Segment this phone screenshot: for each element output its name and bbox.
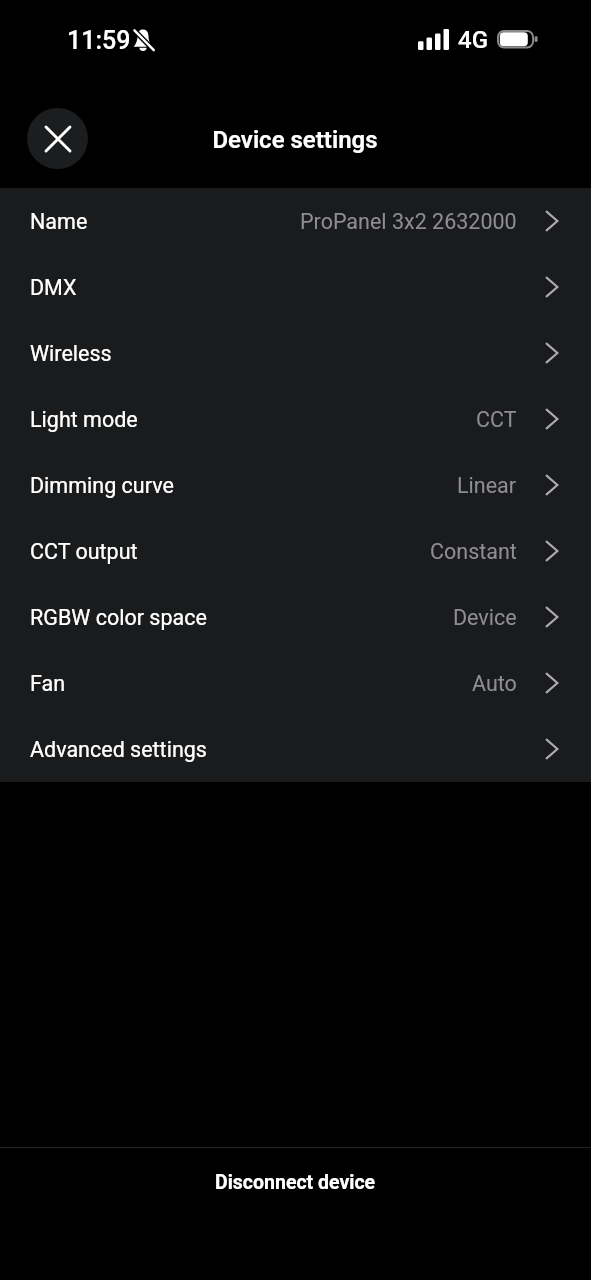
- button[interactable]: Disconnect device: [0, 1148, 591, 1280]
- staticText: 11:59: [67, 26, 131, 55]
- button[interactable]: Advanced settings: [0, 716, 591, 782]
- staticText: Advanced settings: [30, 737, 207, 762]
- staticText: CCT output: [30, 539, 138, 564]
- button[interactable]: Light mode: [0, 386, 591, 452]
- staticText: Wireless: [30, 341, 112, 366]
- staticText: Device settings: [212, 126, 378, 154]
- button[interactable]: Wireless: [0, 320, 591, 386]
- staticText: DMX: [30, 275, 77, 300]
- staticText: Dimming curve: [30, 473, 174, 498]
- staticText: 4G: [458, 26, 488, 54]
- button[interactable]: Close: [27, 108, 88, 169]
- staticText: Constant: [430, 539, 517, 564]
- staticText: ProPanel 3x2 2632000: [300, 209, 517, 234]
- staticText: Linear: [457, 473, 517, 498]
- staticText: RGBW color space: [30, 605, 207, 630]
- button[interactable]: RGBW color space: [0, 584, 591, 650]
- button[interactable]: Dimming curve: [0, 452, 591, 518]
- staticText: Name: [30, 209, 88, 234]
- staticText: CCT: [476, 407, 517, 432]
- staticText: Disconnect device: [215, 1171, 376, 1194]
- staticText: Auto: [472, 671, 517, 696]
- staticText: Light mode: [30, 407, 138, 432]
- button[interactable]: DMX: [0, 254, 591, 320]
- staticText: Fan: [30, 671, 66, 696]
- button[interactable]: CCT output: [0, 518, 591, 584]
- staticText: Device: [453, 605, 517, 630]
- button[interactable]: Fan: [0, 650, 591, 716]
- button[interactable]: Name: [0, 188, 591, 254]
